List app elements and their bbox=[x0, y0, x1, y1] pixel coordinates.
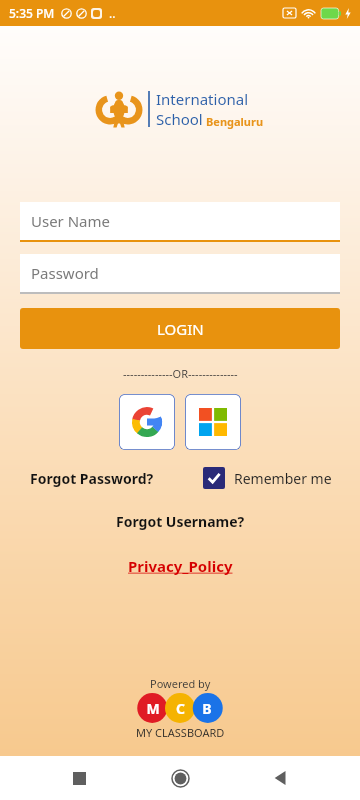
button[interactable]: Recent apps bbox=[57, 756, 101, 800]
button[interactable]: Password bbox=[20, 254, 340, 292]
button[interactable]: LOGIN bbox=[20, 308, 340, 349]
button[interactable]: Forgot Username? bbox=[0, 512, 360, 531]
button[interactable]: Remember me bbox=[203, 467, 332, 489]
staticText: User Name bbox=[31, 211, 111, 231]
button[interactable]: Forgot Password? bbox=[30, 469, 154, 488]
staticText: Password bbox=[31, 263, 99, 283]
staticText: School bbox=[156, 109, 203, 129]
button[interactable]: Sign in with Microsoft bbox=[185, 394, 241, 450]
staticText: International bbox=[156, 89, 249, 109]
staticText: Privacy_Policy bbox=[128, 556, 233, 576]
button[interactable]: Home bbox=[158, 756, 202, 800]
button[interactable]: User Name bbox=[20, 202, 340, 240]
staticText: .. bbox=[109, 5, 116, 21]
staticText: M bbox=[146, 699, 160, 717]
staticText: LOGIN bbox=[157, 319, 204, 339]
staticText: 5:35 PM bbox=[9, 5, 55, 21]
staticText: --------------OR-------------- bbox=[123, 366, 238, 381]
button[interactable]: Privacy_Policy bbox=[0, 556, 360, 576]
button[interactable]: Sign in with Google bbox=[119, 394, 175, 450]
staticText: Remember me bbox=[234, 469, 332, 488]
staticText: C bbox=[176, 699, 185, 717]
staticText: B bbox=[202, 699, 212, 717]
button[interactable]: Back bbox=[259, 756, 303, 800]
staticText: Bengaluru bbox=[206, 114, 264, 129]
staticText: Forgot Username? bbox=[116, 512, 245, 531]
staticText: MY CLASSBOARD bbox=[136, 725, 225, 740]
staticText: Powered by bbox=[150, 676, 211, 691]
staticText: Forgot Password? bbox=[30, 469, 154, 488]
